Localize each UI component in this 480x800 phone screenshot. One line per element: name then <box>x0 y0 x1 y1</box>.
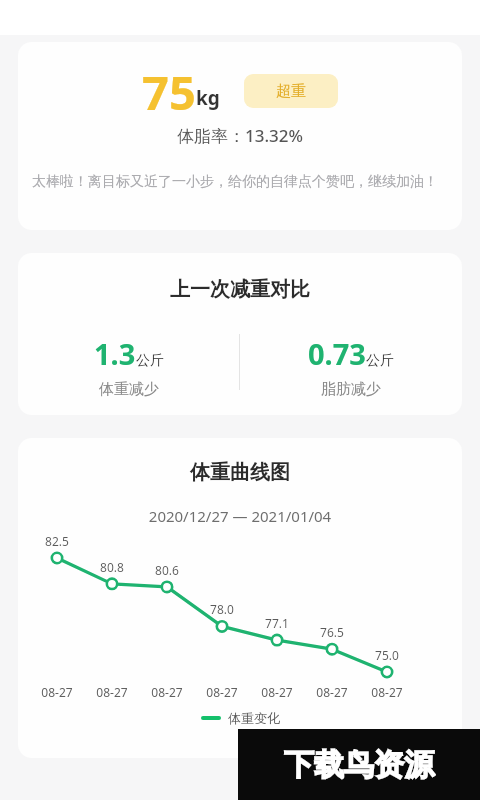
staticText: 上一次减重对比 <box>18 277 462 302</box>
button[interactable]: 上一次减重对比 <box>18 253 462 415</box>
staticText: 1.3 <box>94 334 136 373</box>
staticText: 08-27 <box>367 684 407 700</box>
button[interactable]: 超重 <box>244 74 338 108</box>
staticText: 公斤 <box>366 352 394 370</box>
staticText: 08-27 <box>37 684 77 700</box>
staticText: 2020/12/27 — 2021/01/04 <box>18 506 462 526</box>
staticText: kg <box>196 85 220 111</box>
staticText: 75 <box>142 60 196 116</box>
staticText: 体重减少 <box>99 380 159 399</box>
staticText: 80.6 <box>151 562 183 578</box>
staticText: 体重曲线图 <box>18 460 462 485</box>
staticText: 08-27 <box>147 684 187 700</box>
staticText: 下载鸟资源 <box>284 746 434 784</box>
button[interactable]: 75 <box>18 42 462 230</box>
staticText: 08-27 <box>312 684 352 700</box>
staticText: 0.73 <box>308 334 366 373</box>
staticText: 75.0 <box>371 647 403 663</box>
staticText: 08-27 <box>202 684 242 700</box>
staticText: 公斤 <box>136 352 164 370</box>
staticText: 80.8 <box>96 559 128 575</box>
staticText: 太棒啦！离目标又近了一小步，给你的自律点个赞吧，继续加油！ <box>32 173 438 191</box>
staticText: 脂肪减少 <box>321 380 381 399</box>
button[interactable]: 0.73 <box>240 334 462 399</box>
staticText: 08-27 <box>92 684 132 700</box>
staticText: 77.1 <box>261 615 293 631</box>
staticText: 超重 <box>276 82 306 101</box>
staticText: 体重变化 <box>228 710 280 726</box>
button[interactable]: 1.3 <box>18 334 239 399</box>
staticText: 体脂率：13.32% <box>18 124 462 147</box>
staticText: 78.0 <box>206 601 238 617</box>
staticText: 82.5 <box>41 533 73 549</box>
button[interactable]: 体重曲线图 <box>18 438 462 758</box>
staticText: 76.5 <box>316 624 348 640</box>
staticText: 08-27 <box>257 684 297 700</box>
